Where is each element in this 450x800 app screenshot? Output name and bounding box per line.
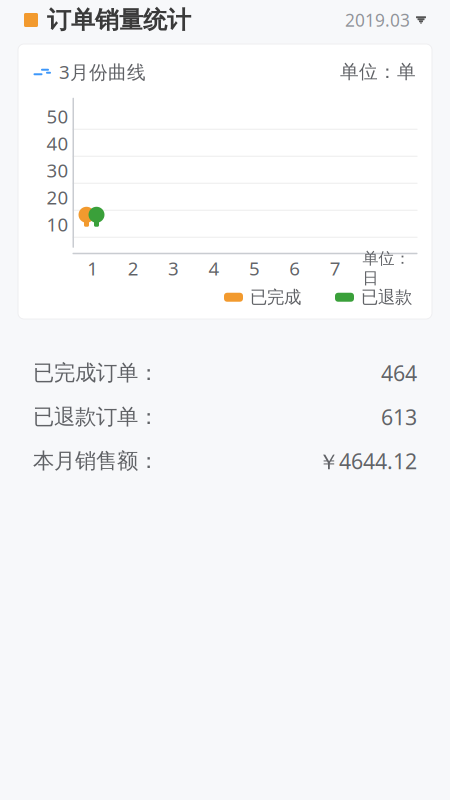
staticText: 订单销量统计 [47,5,191,35]
staticText: 已退款 [361,287,412,308]
staticText: 20 [46,185,68,210]
staticText: 50 [46,104,68,129]
staticText: 4 [208,256,219,281]
button[interactable]: 2019.03 [345,2,426,37]
staticText: 2 [128,256,139,281]
staticText: 已完成订单： [33,360,159,386]
staticText: 40 [46,131,68,156]
staticText: 2019.03 [345,8,410,31]
staticText: 3 [168,256,179,281]
staticText: 30 [46,158,68,183]
staticText: 464 [381,359,417,387]
staticText: 5 [249,256,260,281]
staticText: ￥4644.12 [318,447,417,475]
staticText: 10 [46,212,68,237]
staticText: 1 [87,256,98,281]
staticText: 已完成 [250,287,301,308]
staticText: 3月份曲线 [59,59,146,84]
staticText: 613 [381,403,417,431]
staticText: 单位：日 [362,249,410,288]
staticText: 单位：单 [340,60,416,83]
staticText: 本月销售额： [33,448,159,474]
staticText: 7 [330,256,341,281]
staticText: 6 [289,256,300,281]
staticText: 已退款订单： [33,404,159,430]
